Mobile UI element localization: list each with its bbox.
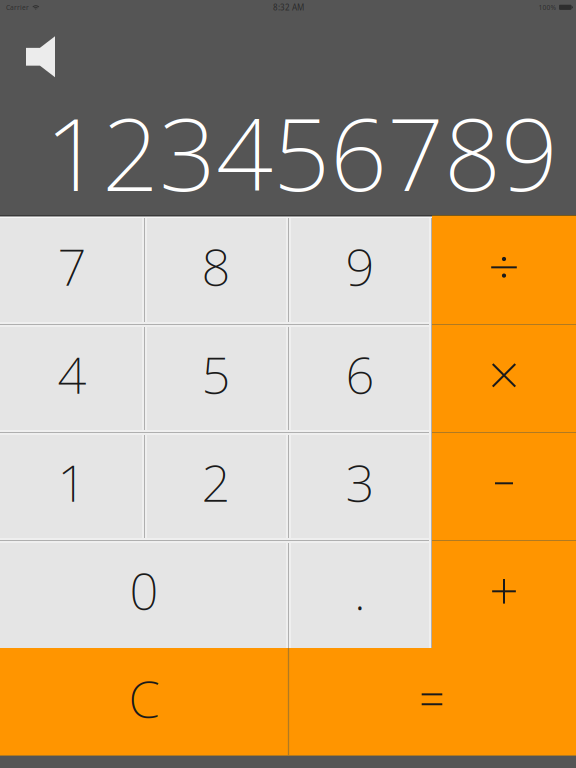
- button[interactable]: Multiply: [432, 324, 576, 432]
- staticText: C: [128, 664, 159, 732]
- button[interactable]: 2: [144, 432, 288, 540]
- staticText: 100%: [538, 3, 556, 12]
- staticText: 123456789: [45, 86, 558, 219]
- button[interactable]: Equals: [288, 648, 576, 756]
- staticText: 0: [129, 556, 158, 624]
- staticText: .: [354, 556, 366, 624]
- button[interactable]: 9: [288, 216, 432, 324]
- button[interactable]: Divide: [432, 216, 576, 324]
- button[interactable]: 8: [144, 216, 288, 324]
- button[interactable]: Add: [432, 540, 576, 648]
- staticText: 7: [57, 232, 86, 300]
- button[interactable]: 4: [0, 324, 144, 432]
- staticText: 5: [201, 340, 230, 408]
- staticText: Carrier: [6, 3, 29, 12]
- button[interactable]: 0: [0, 540, 288, 648]
- staticText: 9: [345, 232, 374, 300]
- staticText: 4: [57, 340, 86, 408]
- staticText: 1: [57, 448, 86, 516]
- button[interactable]: 5: [144, 324, 288, 432]
- button[interactable]: .: [288, 540, 432, 648]
- button[interactable]: 6: [288, 324, 432, 432]
- staticText: 2: [201, 448, 230, 516]
- button[interactable]: Subtract: [432, 432, 576, 540]
- button[interactable]: 1: [0, 432, 144, 540]
- button[interactable]: 7: [0, 216, 144, 324]
- staticText: 6: [345, 340, 374, 408]
- button[interactable]: 3: [288, 432, 432, 540]
- button[interactable]: Clear: [0, 648, 288, 756]
- staticText: 8: [201, 232, 230, 300]
- staticText: 3: [345, 448, 374, 516]
- button[interactable]: Mute: [0, 20, 55, 77]
- staticText: 8:32 AM: [273, 2, 304, 13]
